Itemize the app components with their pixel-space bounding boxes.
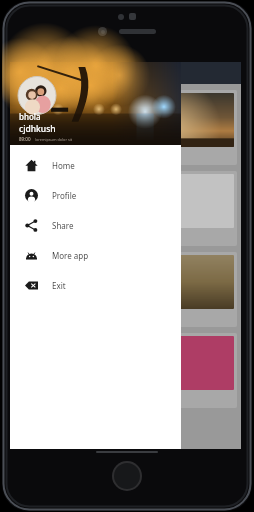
button[interactable]: ATTITUDE <box>14 333 237 408</box>
button[interactable]: FRIENDSHIP <box>14 90 237 165</box>
button[interactable]: bhola <box>10 62 181 145</box>
staticText: Share <box>52 220 74 231</box>
button[interactable]: ROMANTIC <box>14 252 237 327</box>
button[interactable]: More app <box>10 240 181 270</box>
staticText: More app <box>52 250 89 261</box>
button[interactable]: Share <box>10 210 181 240</box>
button[interactable]: FUNNY <box>14 171 237 246</box>
staticText: Exit <box>52 280 66 291</box>
staticText: loremipsum dolor sit <box>35 137 73 142</box>
staticText: FRIENDSHIP <box>17 149 72 161</box>
staticText: bhola <box>19 111 41 122</box>
staticText: cjdhkush <box>19 123 56 135</box>
staticText: Profile <box>52 190 77 201</box>
staticText: Home <box>52 160 75 171</box>
staticText: FUNNY <box>17 230 50 242</box>
button[interactable]: Home <box>10 150 181 180</box>
staticText: 89:00 <box>19 136 31 142</box>
button[interactable]: Profile <box>10 180 181 210</box>
button[interactable]: Exit <box>10 270 181 300</box>
